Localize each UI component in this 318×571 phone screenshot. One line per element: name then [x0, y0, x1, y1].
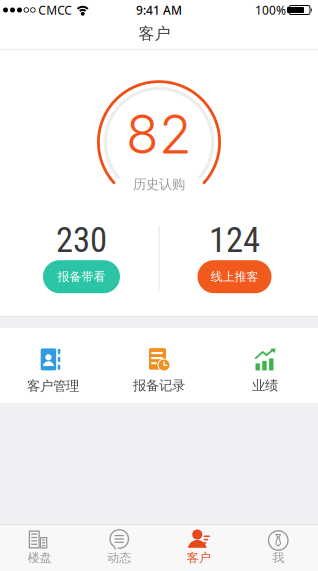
staticText: 线上推客 [210, 269, 258, 284]
button[interactable]: 客户 [159, 525, 238, 571]
staticText: 124 [209, 220, 260, 260]
staticText: 报备带看 [57, 269, 105, 284]
button[interactable]: 业绩 [212, 348, 318, 394]
staticText: 230 [56, 220, 107, 260]
staticText: 客户 [138, 24, 170, 44]
staticText: 报备记录 [133, 377, 185, 394]
button[interactable]: 线上推客 [197, 260, 271, 293]
staticText: 动态 [107, 550, 131, 565]
staticText: 历史认购 [133, 176, 185, 192]
staticText: 100% [255, 2, 286, 18]
staticText: CMCC [38, 2, 72, 18]
button[interactable]: 报备带看 [43, 260, 120, 293]
button[interactable]: 我 [238, 525, 318, 571]
staticText: 客户管理 [27, 378, 79, 394]
staticText: 业绩 [252, 377, 278, 394]
staticText: 楼盘 [28, 550, 52, 565]
staticText: 82 [126, 102, 192, 166]
staticText: 9:41 AM [136, 2, 182, 18]
button[interactable]: 楼盘 [0, 525, 79, 571]
staticText: 客户 [187, 550, 211, 565]
button[interactable]: 动态 [79, 525, 159, 571]
staticText: 我 [272, 550, 284, 565]
button[interactable]: 报备记录 [106, 348, 212, 394]
button[interactable]: 客户管理 [0, 348, 106, 394]
